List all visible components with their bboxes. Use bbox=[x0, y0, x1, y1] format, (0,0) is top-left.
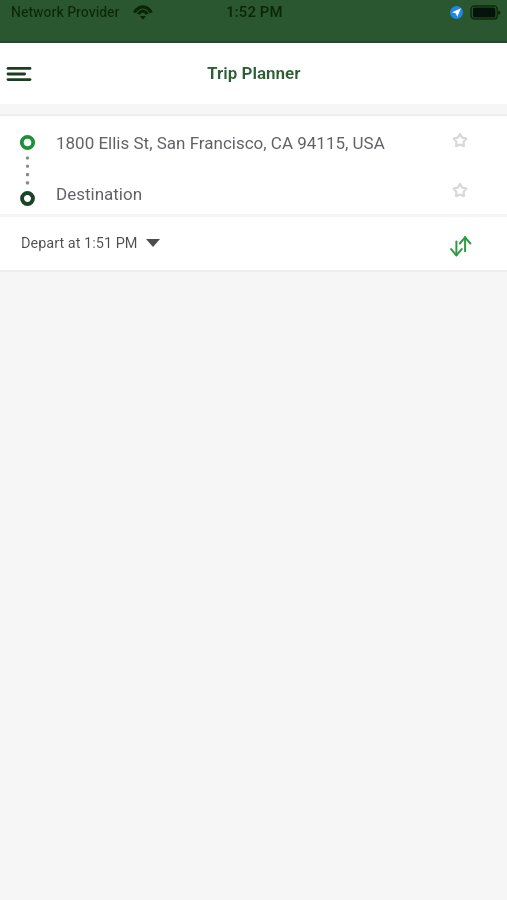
button[interactable]: Destination bbox=[0, 167, 507, 214]
button[interactable]: Open navigation menu bbox=[0, 49, 37, 98]
button[interactable]: 1800 Ellis St, San Francisco, CA 94115, … bbox=[0, 116, 507, 167]
button[interactable]: Save as favourite bbox=[445, 175, 475, 205]
staticText: 1:52 PM bbox=[226, 3, 283, 21]
staticText: Trip Planner bbox=[207, 63, 301, 83]
button[interactable]: Swap origin and destination bbox=[444, 230, 477, 262]
staticText: Destination bbox=[56, 184, 143, 204]
button[interactable]: Depart at 1:51 PM bbox=[0, 227, 170, 260]
staticText: Depart at 1:51 PM bbox=[21, 235, 138, 252]
staticText: 1800 Ellis St, San Francisco, CA 94115, … bbox=[56, 133, 385, 153]
button[interactable]: Save as favourite bbox=[445, 125, 475, 155]
staticText: Network Provider bbox=[11, 4, 120, 20]
